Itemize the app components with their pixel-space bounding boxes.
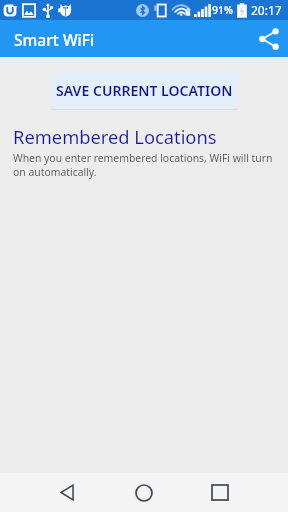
button[interactable]: Back — [40, 473, 96, 512]
staticText: Remembered Locations — [13, 124, 217, 149]
button[interactable]: SAVE CURRENT LOCATION — [51, 72, 238, 109]
staticText: 20:17 — [251, 2, 282, 18]
button[interactable]: Home — [116, 473, 172, 512]
staticText: Smart WiFi — [14, 29, 95, 50]
staticText: SAVE CURRENT LOCATION — [56, 81, 233, 100]
staticText: When you enter remembered locations, WiF… — [13, 151, 280, 179]
button[interactable]: Share — [249, 20, 288, 57]
button[interactable]: Recents — [192, 473, 248, 512]
staticText: 91% — [212, 3, 233, 17]
